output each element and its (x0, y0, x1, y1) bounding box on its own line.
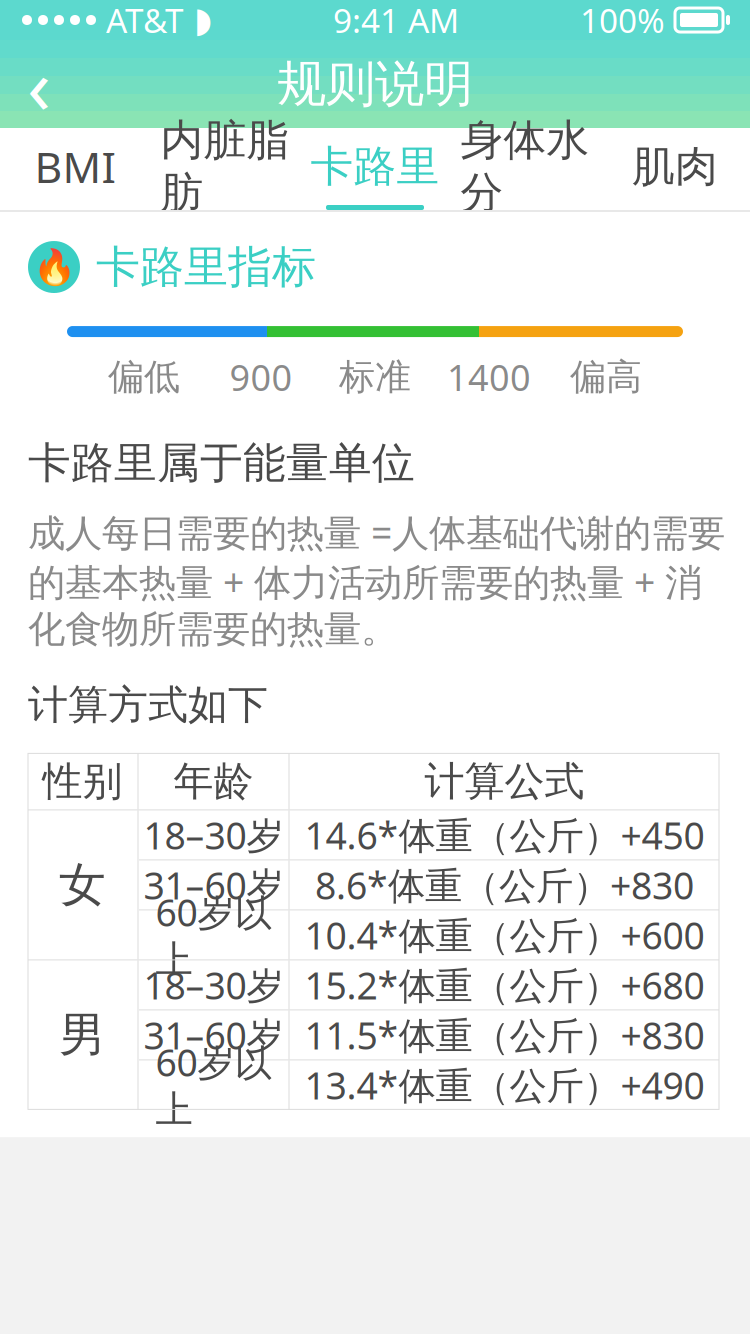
staticText: 15.2*体重（公斤）+680 (304, 960, 704, 1010)
staticText: 女 (59, 856, 106, 913)
staticText: 计算方式如下 (28, 680, 268, 729)
staticText: 计算公式 (424, 757, 584, 806)
staticText: ‹ (27, 33, 51, 135)
staticText: 31–60岁 (143, 860, 283, 910)
button[interactable]: 肌肉 (600, 128, 750, 210)
staticText: 卡路里指标 (96, 240, 316, 294)
button[interactable]: 内脏脂肪 (150, 128, 300, 210)
button[interactable]: 身体水分 (450, 128, 600, 210)
staticText: 偏高 (570, 355, 642, 399)
staticText: BMI (34, 138, 115, 195)
staticText: 8.6*体重（公斤）+830 (315, 860, 694, 910)
staticText: 成人每日需要的热量 =人体基础代谢的需要的基本热量 + 体力活动所需要的热量 +… (28, 507, 725, 652)
staticText: 规则说明 (277, 54, 473, 114)
staticText: 60岁以上 (155, 887, 271, 983)
staticText: 内脏脂肪 (160, 114, 289, 219)
staticText: 年龄 (173, 757, 253, 806)
staticText: 18–30岁 (143, 810, 283, 860)
button[interactable]: 卡路里 (300, 128, 450, 210)
button[interactable]: 返回 (0, 45, 78, 123)
staticText: 男 (59, 1006, 106, 1063)
staticText: 1400 (447, 353, 531, 401)
staticText: 卡路里 (310, 140, 439, 193)
staticText: 11.5*体重（公斤）+830 (304, 1010, 704, 1060)
staticText: 60岁以上 (155, 1037, 271, 1133)
staticText: 31–60岁 (143, 1010, 283, 1060)
staticText: 身体水分 (460, 114, 589, 219)
staticText: 900 (229, 353, 292, 401)
staticText: 肌肉 (632, 140, 718, 193)
staticText: 14.6*体重（公斤）+450 (304, 810, 704, 860)
staticText: 10.4*体重（公斤）+600 (304, 910, 704, 960)
staticText: 9:41 AM (333, 0, 459, 42)
staticText: 100% (580, 0, 665, 42)
staticText: 🔥 (32, 247, 75, 287)
staticText: 性别 (42, 757, 122, 806)
staticText: 标准 (339, 355, 411, 399)
staticText: 偏低 (108, 355, 180, 399)
staticText: 18–30岁 (143, 960, 283, 1010)
staticText: 13.4*体重（公斤）+490 (304, 1060, 704, 1110)
button[interactable]: BMI (0, 128, 150, 210)
staticText: AT&T (106, 0, 184, 42)
staticText: 卡路里属于能量单位 (28, 437, 415, 489)
staticText: ◗ (194, 0, 212, 40)
